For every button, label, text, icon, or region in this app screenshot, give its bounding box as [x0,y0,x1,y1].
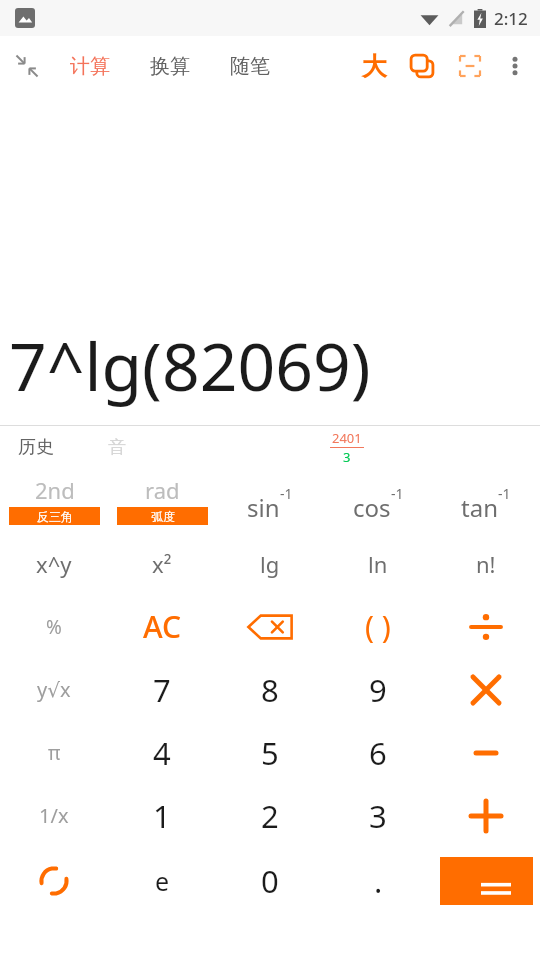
staticText: . [374,860,383,902]
staticText: 2 [261,795,279,837]
button[interactable]: 7 [108,658,216,721]
staticText: AC [143,606,182,647]
staticText: 0 [261,860,279,902]
button[interactable]: rad [108,468,216,532]
staticText: 4 [153,732,171,774]
staticText: n! [476,549,496,579]
staticText: -1 [498,484,511,503]
staticText: e [155,864,170,898]
button[interactable]: 5 [216,721,324,784]
staticText: 2nd [35,475,75,505]
staticText: 2:12 [494,7,528,30]
staticText: 3 [369,795,387,837]
button[interactable]: 2nd [0,468,108,532]
staticText: 换算 [150,54,190,79]
button[interactable]: 0 [216,847,324,915]
button[interactable]: 换算 [130,36,210,96]
button[interactable]: Refresh [0,847,108,915]
button[interactable]: cos [324,468,432,532]
button[interactable]: . [324,847,432,915]
staticText: ln [368,549,388,579]
staticText: 反三角 [37,509,73,524]
button[interactable]: Plus [432,784,540,847]
button[interactable]: π [0,721,108,784]
staticText: -1 [280,484,293,503]
staticText: 弧度 [151,509,175,524]
button[interactable]: e [108,847,216,915]
button[interactable]: Backspace [216,595,324,658]
staticText: 7^lg(82069) [9,320,371,410]
button[interactable]: x^y [0,532,108,595]
staticText: rad [145,475,180,505]
button[interactable]: 计算 [50,36,130,96]
staticText: 6 [369,732,387,774]
staticText: x^y [36,549,72,579]
staticText: 大 [362,51,387,82]
staticText: 7 [153,669,171,711]
button[interactable]: ln [324,532,432,595]
button[interactable]: 3 [324,784,432,847]
button[interactable]: Minus [432,721,540,784]
button[interactable]: Scan [446,42,494,90]
button[interactable]: 9 [324,658,432,721]
staticText: 9 [369,669,387,711]
staticText: 历史 [18,436,54,459]
staticText: % [46,614,62,640]
staticText: x² [152,549,172,579]
button[interactable]: AC [108,595,216,658]
button[interactable]: 1 [108,784,216,847]
staticText: -1 [391,484,404,503]
button[interactable]: n! [432,532,540,595]
button[interactable]: 历史 [18,436,54,459]
staticText: 计算 [70,54,110,79]
staticText: tan [461,491,498,524]
button[interactable]: Multiply [432,658,540,721]
button[interactable]: 6 [324,721,432,784]
button[interactable]: Collapse [0,36,54,96]
staticText: 8 [261,669,279,711]
button[interactable]: More options [494,45,536,87]
staticText: 随笔 [230,54,270,79]
button[interactable]: lg [216,532,324,595]
staticText: 音 [108,436,126,459]
button[interactable]: y√x [0,658,108,721]
staticText: ( ) [365,606,391,647]
button[interactable]: Equals [440,857,533,905]
button[interactable]: 大 [350,42,398,90]
button[interactable]: Copy [398,42,446,90]
staticText: 1 [153,795,171,837]
staticText: lg [260,549,280,579]
button[interactable]: x² [108,532,216,595]
staticText: 3 [343,448,351,466]
staticText: 1/x [39,802,69,829]
button[interactable]: 1/x [0,784,108,847]
staticText: 5 [261,732,279,774]
button[interactable]: ( ) [324,595,432,658]
button[interactable]: 4 [108,721,216,784]
button[interactable]: 音 [108,436,126,459]
button[interactable]: 2 [216,784,324,847]
staticText: y√x [37,676,71,703]
button[interactable]: Divide [432,595,540,658]
button[interactable]: % [0,595,108,658]
button[interactable]: 8 [216,658,324,721]
staticText: cos [353,491,391,524]
staticText: 2401 [332,429,362,447]
button[interactable]: sin [216,468,324,532]
staticText: π [48,740,61,766]
button[interactable]: 随笔 [210,36,290,96]
button[interactable]: tan [432,468,540,532]
staticText: sin [247,491,280,524]
